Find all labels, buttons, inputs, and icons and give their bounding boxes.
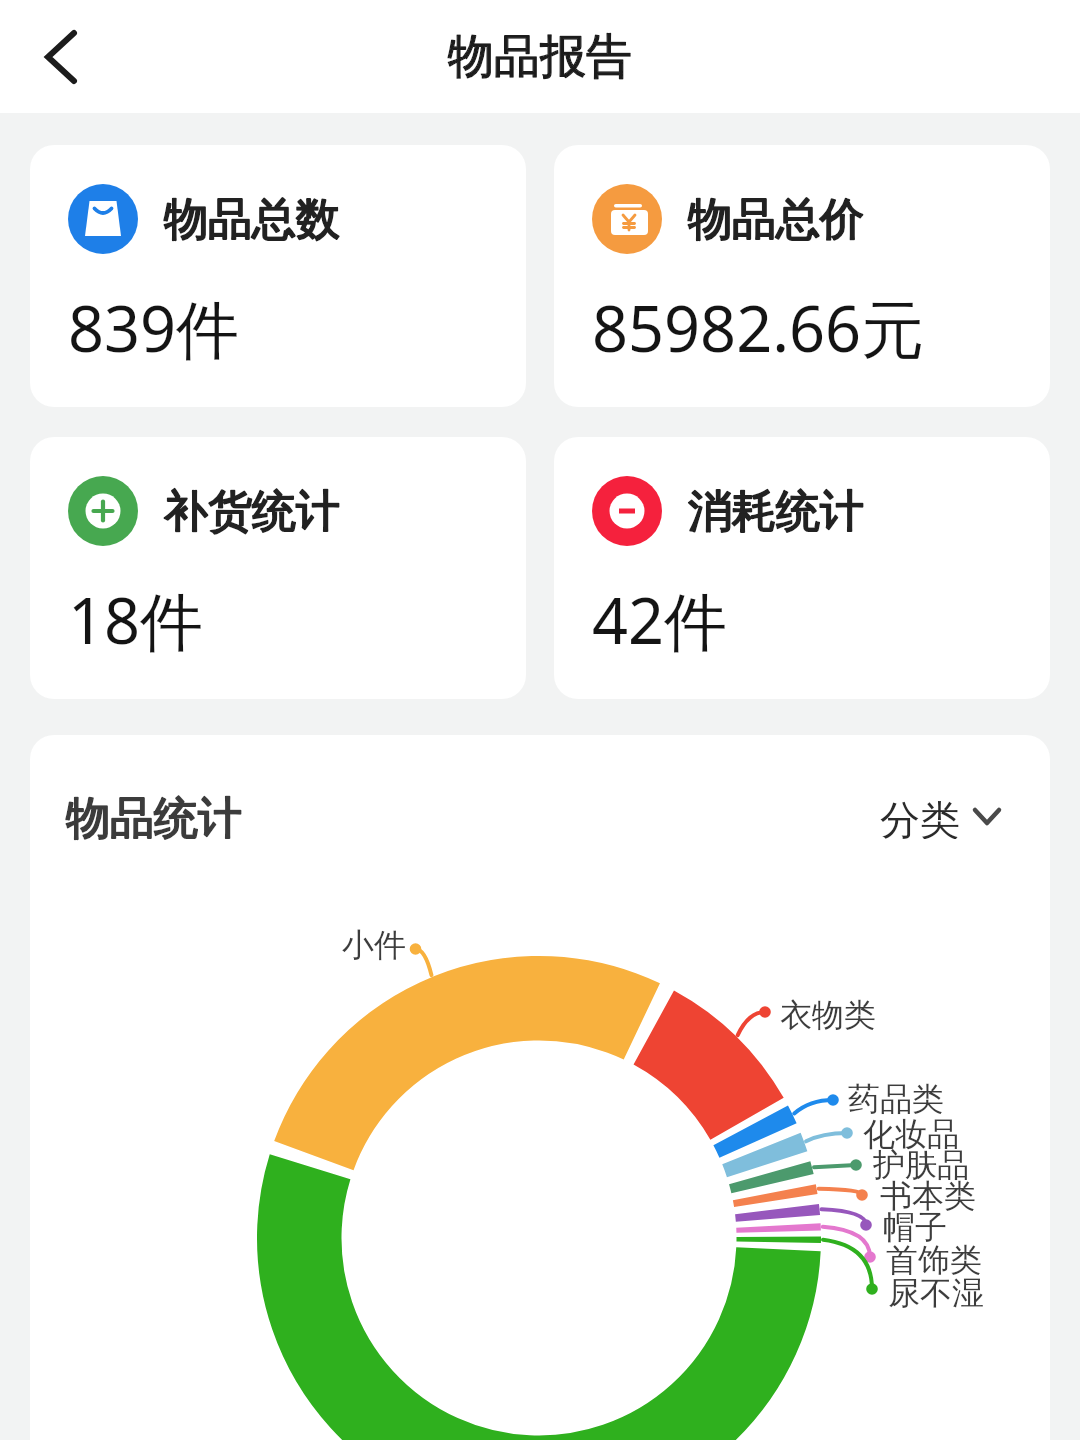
staticText: 物品报告 xyxy=(448,28,632,86)
staticText: 尿不湿 xyxy=(888,1273,984,1313)
staticText: 85982.66元 xyxy=(592,285,925,371)
staticText: 物品总数 xyxy=(164,192,340,247)
staticText: 物品总价 xyxy=(688,192,864,247)
staticText: 消耗统计 xyxy=(688,484,864,539)
staticText: 小件 xyxy=(342,925,406,965)
staticText: 物品统计 xyxy=(66,791,242,846)
button[interactable] xyxy=(0,0,110,113)
staticText: 18件 xyxy=(68,577,204,663)
button[interactable]: 消耗统计 xyxy=(554,437,1050,699)
staticText: 物品总价 xyxy=(688,192,864,247)
staticText: 消耗统计 xyxy=(688,484,864,539)
staticText: 补货统计 xyxy=(164,484,340,539)
staticText: 839件 xyxy=(68,285,240,371)
staticText: 物品报告 xyxy=(448,28,632,86)
staticText: 帽子 xyxy=(883,1207,947,1247)
staticText: 补货统计 xyxy=(164,484,340,539)
staticText: 药品类 xyxy=(848,1079,944,1119)
staticText: 分类 xyxy=(880,795,960,839)
staticText: 42件 xyxy=(592,577,728,663)
button[interactable]: 分类 xyxy=(880,795,1000,839)
staticText: 物品总数 xyxy=(164,192,340,247)
staticText: 化妆品 xyxy=(863,1114,959,1154)
button[interactable]: 物品总数 xyxy=(30,145,526,407)
button[interactable]: 补货统计 xyxy=(30,437,526,699)
staticText: 护肤品 xyxy=(873,1145,969,1185)
staticText: 书本类 xyxy=(880,1176,976,1216)
staticText: 首饰类 xyxy=(886,1240,982,1280)
staticText: 物品统计 xyxy=(66,791,242,846)
staticText: 衣物类 xyxy=(780,995,876,1035)
button[interactable]: 物品总价 xyxy=(554,145,1050,407)
